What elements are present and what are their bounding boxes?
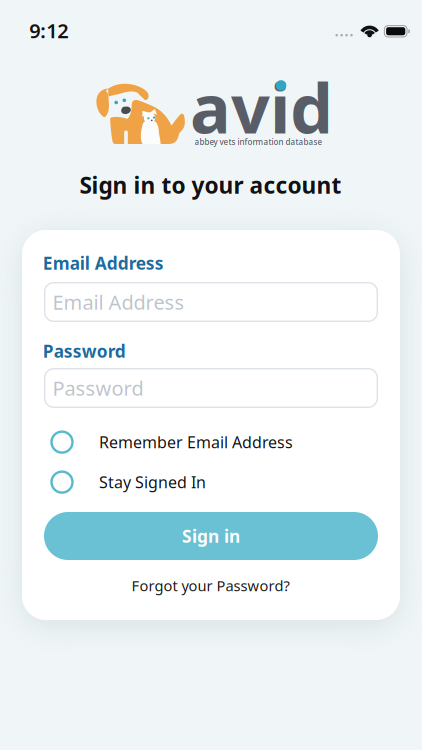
button[interactable]: Stay Signed In xyxy=(51,471,206,493)
staticText: Email Address xyxy=(52,289,184,315)
staticText: Password xyxy=(43,339,126,362)
staticText: Stay Signed In xyxy=(99,471,206,493)
button[interactable]: Sign in xyxy=(44,512,378,560)
staticText: Forgot your Password? xyxy=(131,576,289,595)
staticText: 9:12 xyxy=(29,17,68,44)
staticText: abbey vets information database xyxy=(194,137,322,147)
textField[interactable]: Password xyxy=(52,375,378,401)
staticText: avid xyxy=(190,62,333,152)
textField[interactable]: Email Address xyxy=(52,289,378,315)
staticText: Sign in to your account xyxy=(79,170,341,200)
staticText: Remember Email Address xyxy=(99,431,293,453)
button[interactable]: Remember Email Address xyxy=(51,431,293,453)
button[interactable]: Forgot your Password? xyxy=(131,576,289,595)
staticText: Sign in xyxy=(182,524,240,547)
staticText: Email Address xyxy=(43,251,164,274)
staticText: Password xyxy=(52,375,143,401)
